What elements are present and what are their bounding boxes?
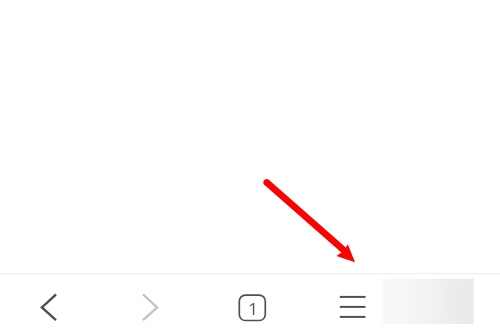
button[interactable]: Tabs (227, 283, 276, 332)
button[interactable]: Back (24, 283, 73, 332)
button[interactable]: Forward (126, 283, 175, 332)
button[interactable]: Menu (328, 283, 377, 332)
staticText: 1 (248, 297, 258, 320)
